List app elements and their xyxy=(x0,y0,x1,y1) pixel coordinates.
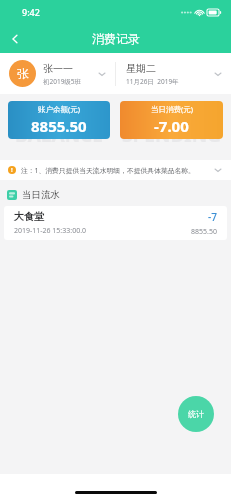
staticText: 9:42 xyxy=(22,6,40,18)
button[interactable]: 星期二 xyxy=(116,62,231,86)
staticText: SPENDING xyxy=(120,122,223,148)
staticText: 统计 xyxy=(188,409,204,419)
staticText: 当日消费(元) xyxy=(151,104,193,114)
staticText: 注：1、消费只提供当天流水明细，不提供具体菜品名称。 xyxy=(21,166,213,175)
button[interactable]: 账户余额(元) xyxy=(8,101,110,139)
button[interactable]: 当日消费(元) xyxy=(120,101,223,139)
button[interactable]: Back xyxy=(0,24,30,53)
staticText: -7 xyxy=(208,210,217,224)
staticText: BALANCE xyxy=(8,122,110,148)
staticText: 11月26日 2019年 xyxy=(126,77,179,86)
staticText: 消费记录 xyxy=(92,31,140,46)
staticText: 8855.50 xyxy=(31,116,87,136)
staticText: 账户余额(元) xyxy=(38,104,80,114)
staticText: -7.00 xyxy=(154,116,189,136)
button[interactable]: 统计 xyxy=(178,396,214,432)
staticText: 2019-11-26 15:33:00.0 xyxy=(14,226,87,236)
staticText: 大食堂 xyxy=(14,210,44,223)
staticText: 张一一 xyxy=(43,62,73,75)
staticText: ! xyxy=(11,166,13,174)
button[interactable]: 张 xyxy=(0,60,115,87)
button[interactable]: ! xyxy=(0,160,231,180)
staticText: 初2019级5班 xyxy=(43,77,82,86)
staticText: 张 xyxy=(17,66,29,81)
staticText: 星期二 xyxy=(126,62,156,75)
staticText: 当日流水 xyxy=(22,189,60,201)
button[interactable]: 大食堂 xyxy=(4,206,227,240)
staticText: 8855.50 xyxy=(191,227,217,237)
